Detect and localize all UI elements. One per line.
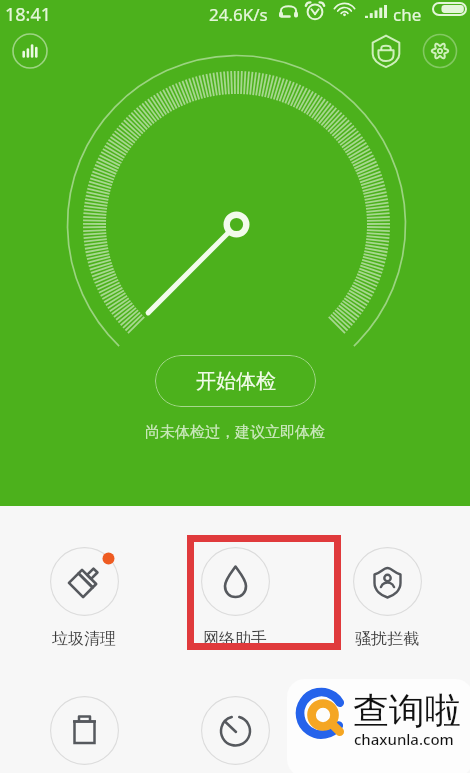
staticText: 骚扰拦截 [355, 629, 419, 649]
button[interactable]: 垃圾清理 [34, 547, 134, 649]
staticText: che [393, 3, 422, 26]
button[interactable]: 病毒扫描 [337, 696, 437, 773]
staticText: 18:41 [5, 2, 52, 27]
staticText: 垃圾清理 [52, 629, 116, 649]
button[interactable]: 应用管理 [34, 696, 134, 773]
button[interactable]: 开始体检 [155, 355, 316, 407]
staticText: 网络助手 [203, 629, 267, 649]
button[interactable]: Settings [422, 33, 458, 69]
button[interactable]: 省电优化 [185, 696, 285, 773]
staticText: 尚未体检过，建议立即体检 [145, 423, 325, 442]
staticText: 查询啦 [353, 688, 461, 733]
staticText: chaxunla.com [354, 729, 454, 749]
button[interactable]: 网络助手 [185, 547, 285, 649]
staticText: 24.6K/s [209, 3, 268, 26]
staticText: 开始体检 [196, 369, 276, 394]
button[interactable]: App lock [368, 33, 404, 69]
button[interactable]: Traffic statistics [12, 33, 48, 69]
button[interactable]: 骚扰拦截 [337, 547, 437, 649]
